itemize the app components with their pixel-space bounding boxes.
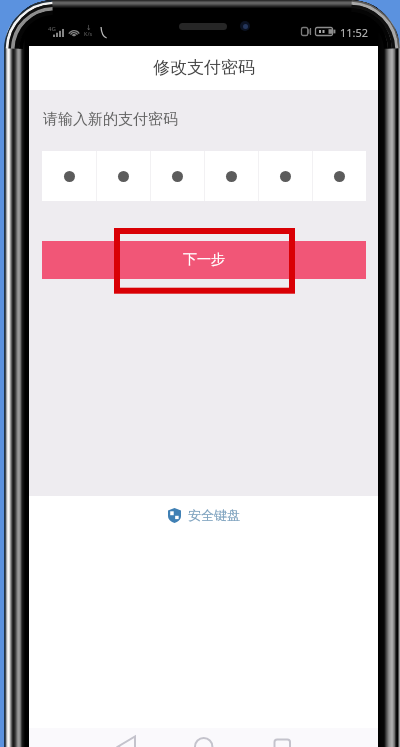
button[interactable]: Password digit 3	[151, 151, 204, 201]
staticText: K/s	[84, 30, 93, 37]
button[interactable]: 下一步	[42, 241, 366, 279]
button[interactable]: Password digit 6	[313, 151, 366, 201]
staticText: 下一步	[183, 251, 225, 269]
staticText: 修改支付密码	[153, 57, 255, 78]
button[interactable]: Password digit 1	[42, 151, 96, 201]
button[interactable]: Home	[191, 732, 217, 747]
staticText: 11:52	[340, 25, 369, 40]
staticText: 请输入新的支付密码	[43, 110, 178, 129]
button[interactable]: 安全键盘	[160, 504, 248, 526]
staticText: 4G	[48, 25, 56, 33]
button[interactable]: Password digit 2	[97, 151, 150, 201]
staticText: ↓	[86, 24, 92, 32]
button[interactable]: Recent apps	[269, 732, 295, 747]
button[interactable]: Password digit 4	[205, 151, 258, 201]
button[interactable]: Back	[115, 732, 141, 747]
staticText: 安全键盘	[188, 507, 240, 523]
button[interactable]: Password digit 5	[259, 151, 312, 201]
